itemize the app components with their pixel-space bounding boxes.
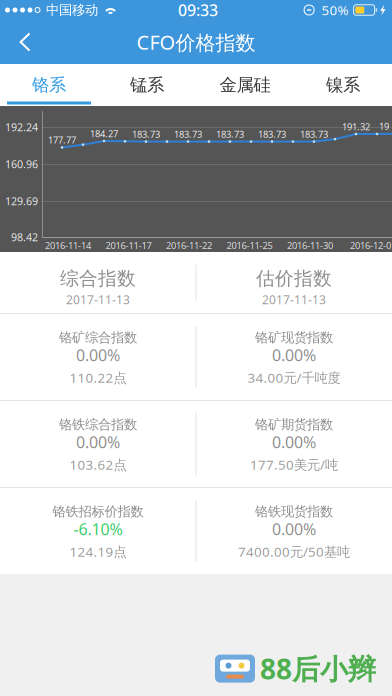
staticText: 金属硅 bbox=[219, 74, 270, 96]
staticText: 0.00% bbox=[76, 344, 120, 366]
staticText: 中国移动 bbox=[46, 2, 98, 18]
staticText: 0.00% bbox=[272, 344, 316, 366]
staticText: 183.73 bbox=[132, 128, 160, 140]
staticText: 09:33 bbox=[178, 0, 218, 21]
staticText: 0.00% bbox=[272, 431, 316, 453]
staticText: 50% bbox=[322, 1, 349, 19]
staticText: 183.73 bbox=[174, 128, 202, 140]
staticText: 124.19点 bbox=[69, 543, 126, 560]
staticText: -6.10% bbox=[73, 518, 122, 540]
staticText: 184.27 bbox=[90, 127, 118, 140]
staticText: 88后小辫 bbox=[260, 650, 376, 687]
staticText: 2016-11-30 bbox=[287, 239, 333, 252]
staticText: 160.96 bbox=[5, 157, 38, 171]
button[interactable]: 返回 bbox=[0, 20, 50, 64]
staticText: 2016-11-22 bbox=[166, 239, 212, 252]
button[interactable]: 锰系 bbox=[98, 64, 196, 106]
staticText: 0.00% bbox=[76, 431, 120, 453]
staticText: 锰系 bbox=[130, 74, 164, 96]
staticText: 110.22点 bbox=[69, 369, 126, 386]
staticText: 2017-11-13 bbox=[262, 291, 326, 307]
staticText: 103.62点 bbox=[69, 456, 126, 473]
staticText: 铬铁招标价指数 bbox=[52, 503, 143, 520]
staticText: 2017-11-13 bbox=[66, 291, 130, 307]
staticText: 7400.00元/50基吨 bbox=[238, 543, 350, 560]
staticText: 177.77 bbox=[48, 134, 76, 146]
button[interactable]: 镍系 bbox=[294, 64, 392, 106]
staticText: 铬铁现货指数 bbox=[255, 503, 333, 520]
staticText: 191.32 bbox=[342, 120, 370, 133]
staticText: 129.69 bbox=[5, 194, 38, 208]
staticText: 铬矿现货指数 bbox=[255, 329, 333, 346]
staticText: 2016-11-17 bbox=[105, 239, 151, 252]
staticText: 铬矿综合指数 bbox=[59, 329, 137, 346]
staticText: 综合指数 bbox=[60, 267, 136, 290]
staticText: 183.73 bbox=[216, 128, 244, 140]
staticText: CFO价格指数 bbox=[136, 29, 255, 55]
staticText: 铬铁综合指数 bbox=[59, 416, 137, 433]
staticText: 2016-12-0 bbox=[350, 239, 391, 252]
staticText: 镍系 bbox=[326, 74, 360, 96]
button[interactable]: 铬系 bbox=[0, 64, 98, 106]
staticText: 估价指数 bbox=[256, 267, 332, 290]
staticText: 183.73 bbox=[258, 128, 286, 140]
staticText: 0.00% bbox=[272, 518, 316, 540]
staticText: 19 bbox=[379, 120, 389, 132]
staticText: 2016-11-14 bbox=[45, 239, 91, 252]
staticText: 2016-11-25 bbox=[226, 239, 272, 252]
button[interactable]: 金属硅 bbox=[196, 64, 294, 106]
staticText: 铬系 bbox=[32, 74, 66, 96]
staticText: 铬矿期货指数 bbox=[255, 416, 333, 433]
staticText: 98.42 bbox=[11, 230, 38, 244]
staticText: 183.73 bbox=[300, 128, 328, 140]
staticText: 192.24 bbox=[5, 120, 38, 134]
staticText: 177.50美元/吨 bbox=[250, 456, 338, 473]
staticText: 34.00元/千吨度 bbox=[247, 369, 340, 386]
